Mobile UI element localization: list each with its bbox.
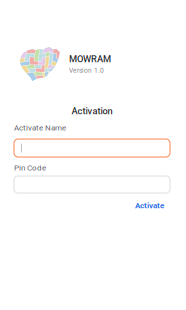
staticText: Activate xyxy=(135,201,164,210)
staticText: Pin Code xyxy=(14,163,46,172)
staticText: Version 1.0 xyxy=(69,67,104,74)
staticText: Activate Name xyxy=(14,123,66,132)
button[interactable]: Activate xyxy=(14,201,164,210)
staticText: MOWRAM xyxy=(69,54,111,64)
staticText: Activation xyxy=(71,105,112,116)
